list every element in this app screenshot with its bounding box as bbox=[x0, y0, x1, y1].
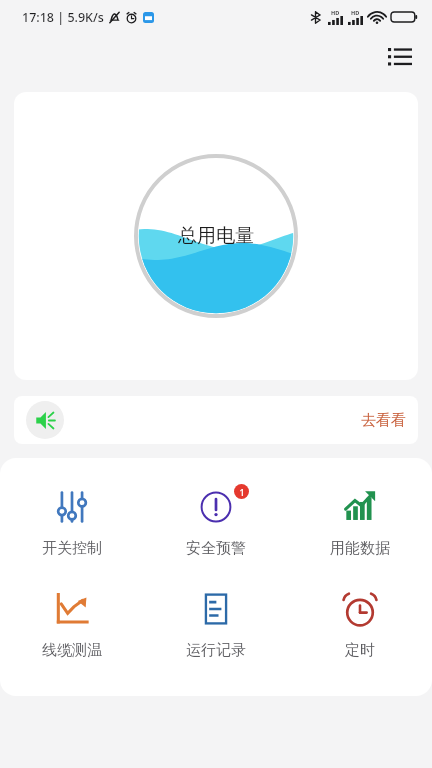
button[interactable]: 线缆测温 bbox=[0, 586, 144, 662]
button[interactable]: 开关控制 bbox=[0, 484, 144, 560]
button[interactable]: 用能数据 bbox=[288, 484, 432, 560]
staticText: 1 bbox=[239, 486, 245, 498]
staticText: 线缆测温 bbox=[42, 641, 102, 660]
staticText: 开关控制 bbox=[42, 539, 102, 558]
button[interactable]: 运行记录 bbox=[144, 586, 288, 662]
button[interactable]: 1 bbox=[144, 484, 288, 560]
staticText: 安全预警 bbox=[186, 539, 246, 558]
button[interactable]: Menu bbox=[380, 36, 420, 76]
staticText: 17:18 | 5.9K/s bbox=[22, 9, 104, 26]
staticText: 运行记录 bbox=[186, 641, 246, 660]
button[interactable]: 定时 bbox=[288, 586, 432, 662]
button[interactable]: 总用电量 bbox=[14, 92, 418, 380]
staticText: HD bbox=[351, 9, 360, 16]
staticText: 用能数据 bbox=[330, 539, 390, 558]
staticText: HD bbox=[331, 9, 340, 16]
button[interactable]: 去看看 bbox=[361, 411, 406, 430]
staticText: 定时 bbox=[345, 641, 375, 660]
button[interactable]: 去看看 bbox=[14, 396, 418, 444]
staticText: 总用电量 bbox=[178, 224, 254, 248]
